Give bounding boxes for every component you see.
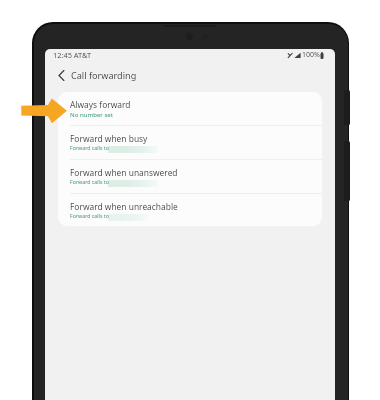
staticText: 12:45 AT&T bbox=[53, 50, 92, 60]
staticText: No number set bbox=[70, 110, 113, 118]
button[interactable]: Back bbox=[45, 63, 335, 92]
button[interactable]: Forward when unanswered bbox=[58, 160, 322, 193]
staticText: Forward calls to bbox=[70, 178, 109, 185]
staticText: Always forward bbox=[70, 99, 131, 110]
staticText: Forward calls to bbox=[70, 144, 109, 151]
button[interactable]: Always forward bbox=[58, 92, 322, 125]
button[interactable]: Forward when unreachable bbox=[58, 194, 322, 226]
staticText: Forward when unanswered bbox=[70, 167, 178, 178]
staticText: Forward when busy bbox=[70, 133, 148, 144]
staticText: Call forwarding bbox=[71, 69, 137, 81]
staticText: 100% bbox=[302, 50, 320, 60]
button[interactable]: Forward when busy bbox=[58, 126, 322, 159]
button[interactable]: Back bbox=[52, 66, 70, 84]
staticText: Forward when unreachable bbox=[70, 201, 178, 212]
staticText: Forward calls to bbox=[70, 212, 109, 219]
